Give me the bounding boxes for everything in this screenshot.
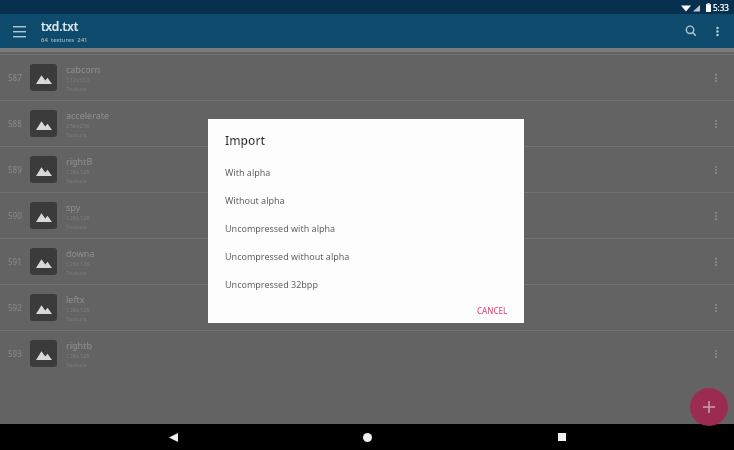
staticText: 128x128 bbox=[66, 168, 90, 176]
staticText: 128x128 bbox=[66, 214, 90, 222]
staticText: 128x128 bbox=[66, 306, 90, 314]
staticText: 64 textures 241 bbox=[41, 36, 88, 44]
staticText: With alpha bbox=[225, 166, 271, 178]
button[interactable]: 589 bbox=[0, 146, 734, 192]
staticText: rightB bbox=[66, 155, 93, 167]
staticText: Import bbox=[225, 132, 266, 148]
staticText: 5:33 bbox=[713, 2, 729, 13]
button[interactable]: 591 bbox=[0, 238, 734, 284]
button[interactable]: Uncompressed without alpha bbox=[208, 242, 524, 270]
staticText: Texture bbox=[66, 315, 87, 323]
button[interactable]: 590 bbox=[0, 192, 734, 238]
staticText: Texture bbox=[66, 361, 87, 369]
button[interactable]: Recent apps bbox=[540, 424, 584, 450]
staticText: spy bbox=[66, 201, 81, 213]
button[interactable]: 592 bbox=[0, 284, 734, 330]
button[interactable]: CANCEL bbox=[472, 301, 513, 320]
button[interactable]: More options bbox=[704, 18, 730, 44]
button[interactable]: Open navigation drawer bbox=[6, 18, 32, 44]
button[interactable]: With alpha bbox=[208, 158, 524, 186]
button[interactable]: 587 bbox=[0, 54, 734, 100]
staticText: CANCEL bbox=[477, 305, 508, 316]
staticText: 592 bbox=[8, 302, 22, 313]
staticText: 589 bbox=[8, 164, 22, 175]
staticText: accelerate bbox=[66, 109, 110, 121]
staticText: 591 bbox=[8, 256, 22, 267]
button[interactable]: Uncompressed with alpha bbox=[208, 214, 524, 242]
button[interactable]: Uncompressed 32bpp bbox=[208, 270, 524, 298]
staticText: Texture bbox=[66, 269, 87, 277]
staticText: Without alpha bbox=[225, 194, 285, 206]
staticText: Uncompressed with alpha bbox=[225, 222, 336, 234]
staticText: rightb bbox=[66, 339, 92, 351]
staticText: downa bbox=[66, 247, 95, 259]
button[interactable]: 588 bbox=[0, 100, 734, 146]
button[interactable]: 593 bbox=[0, 330, 734, 376]
staticText: Uncompressed 32bpp bbox=[225, 278, 318, 290]
staticText: cabcorn bbox=[66, 63, 100, 75]
staticText: Texture bbox=[66, 223, 87, 231]
staticText: 128x128 bbox=[66, 352, 90, 360]
staticText: Texture bbox=[66, 85, 87, 93]
staticText: 590 bbox=[8, 210, 22, 221]
staticText: leftx bbox=[66, 293, 85, 305]
button[interactable]: Search bbox=[678, 18, 704, 44]
staticText: Texture bbox=[66, 177, 87, 185]
button[interactable]: Without alpha bbox=[208, 186, 524, 214]
staticText: 588 bbox=[8, 118, 22, 129]
staticText: txd.txt bbox=[41, 18, 79, 34]
button[interactable]: Add bbox=[690, 388, 728, 426]
button[interactable]: Back bbox=[151, 424, 195, 450]
staticText: 593 bbox=[8, 348, 22, 359]
button[interactable]: Home bbox=[345, 424, 389, 450]
staticText: 128x128 bbox=[66, 260, 90, 268]
staticText: Texture bbox=[66, 131, 87, 139]
staticText: Uncompressed without alpha bbox=[225, 250, 350, 262]
staticText: 512x512 bbox=[66, 76, 90, 84]
staticText: 256x256 bbox=[66, 122, 90, 130]
staticText: 587 bbox=[8, 72, 22, 83]
